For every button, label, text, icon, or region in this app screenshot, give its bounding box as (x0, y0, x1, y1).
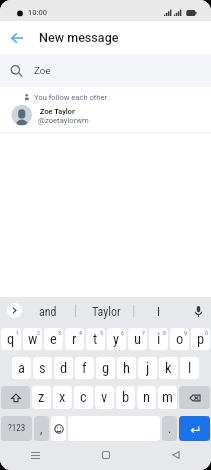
button[interactable]: You follow each other (0, 87, 211, 133)
staticText: j (146, 360, 150, 377)
button[interactable]: r (65, 328, 84, 350)
button[interactable]: t (86, 328, 105, 350)
staticText: Taylor (92, 305, 121, 319)
button[interactable]: w (23, 328, 42, 350)
button[interactable]: j (138, 357, 157, 379)
staticText: k (165, 360, 172, 377)
button[interactable]: Zoe (0, 54, 211, 88)
staticText: 1 (16, 329, 19, 336)
staticText: f (82, 360, 87, 377)
staticText: , (40, 422, 43, 436)
button[interactable]: f (75, 357, 94, 379)
staticText: 3 (58, 329, 61, 336)
staticText: d (60, 360, 68, 377)
button[interactable]: Voice input (188, 302, 209, 320)
button[interactable]: n (137, 386, 156, 409)
button[interactable]: x (53, 386, 72, 409)
button[interactable]: k (159, 357, 178, 379)
staticText: ?123 (8, 423, 26, 434)
staticText: r (72, 331, 77, 348)
button[interactable]: b (116, 386, 135, 409)
staticText: v (101, 389, 108, 406)
staticText: Zoe (34, 65, 51, 76)
button[interactable]: , (34, 416, 49, 441)
staticText: 9 (184, 329, 187, 336)
button[interactable]: More suggestions (7, 303, 22, 318)
button[interactable]: Back (4, 25, 29, 50)
button[interactable]: g (96, 357, 115, 379)
staticText: . (168, 422, 172, 436)
button[interactable]: c (74, 386, 93, 409)
button[interactable]: Enter (179, 416, 210, 441)
staticText: 0 (205, 329, 208, 336)
staticText: and (39, 305, 57, 319)
staticText: l (188, 360, 192, 377)
button[interactable]: ?123 (1, 416, 32, 441)
button[interactable]: Back (141, 440, 211, 470)
staticText: y (113, 331, 120, 348)
staticText: 2 (37, 329, 40, 336)
staticText: New message (39, 30, 119, 45)
button[interactable]: Backspace (179, 386, 210, 409)
button[interactable]: e (44, 328, 63, 350)
button[interactable]: Shift (1, 386, 30, 409)
staticText: z (38, 389, 45, 406)
staticText: You follow each other (34, 93, 108, 102)
staticText: n (143, 389, 151, 406)
button[interactable]: s (33, 357, 52, 379)
staticText: b (122, 389, 130, 406)
button[interactable]: Home (71, 440, 141, 470)
staticText: m (162, 389, 173, 406)
staticText: h (123, 360, 131, 377)
button[interactable]: z (32, 386, 51, 409)
staticText: e (50, 331, 57, 348)
button[interactable]: l (180, 357, 199, 379)
staticText: 7 (142, 329, 145, 336)
staticText: 8 (163, 329, 166, 336)
staticText: 5 (100, 329, 103, 336)
button[interactable]: i (149, 328, 168, 350)
button[interactable]: Emoji (51, 416, 66, 441)
staticText: Zoe Taylor (40, 107, 75, 116)
button[interactable]: . (162, 416, 177, 441)
staticText: u (134, 331, 142, 348)
staticText: 10:00 (28, 8, 48, 17)
staticText: q (7, 331, 15, 348)
staticText: 6 (121, 329, 124, 336)
button[interactable]: m (158, 386, 177, 409)
staticText: a (18, 360, 25, 377)
staticText: o (176, 331, 184, 348)
button[interactable]: v (95, 386, 114, 409)
button[interactable]: p (191, 328, 210, 350)
button[interactable]: u (128, 328, 147, 350)
staticText: g (102, 360, 110, 377)
staticText: t (93, 331, 98, 348)
button[interactable]: q (1, 328, 21, 350)
staticText: 4 (79, 329, 82, 336)
staticText: p (197, 331, 205, 348)
staticText: @zoetaylorwm (38, 116, 89, 125)
button[interactable]: d (54, 357, 73, 379)
staticText: w (28, 331, 38, 348)
staticText: s (39, 360, 46, 377)
button[interactable]: h (117, 357, 136, 379)
button[interactable]: Recents (0, 440, 71, 470)
button[interactable]: y (107, 328, 126, 350)
staticText: I (157, 305, 160, 319)
button[interactable]: a (12, 357, 31, 379)
button[interactable]: o (170, 328, 189, 350)
staticText: x (59, 389, 66, 406)
staticText: c (80, 389, 87, 406)
staticText: i (157, 331, 161, 348)
